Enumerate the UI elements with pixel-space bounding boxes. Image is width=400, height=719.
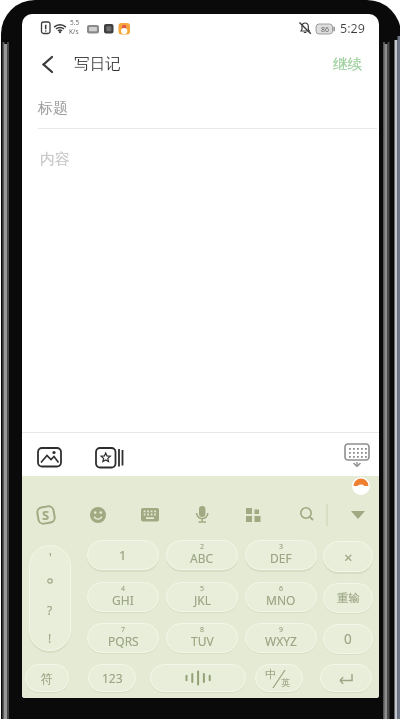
button[interactable]: 2 [166, 540, 238, 570]
button[interactable]: 重输 [323, 583, 373, 613]
staticText: PQRS [108, 633, 139, 649]
button[interactable] [137, 502, 163, 528]
staticText: 9 [279, 625, 284, 635]
staticText: K/s [69, 27, 79, 36]
button[interactable]: 1 [87, 540, 159, 570]
button[interactable]: 5 [166, 582, 238, 612]
staticText: TUV [191, 633, 214, 649]
staticText: 继续 [333, 55, 362, 73]
staticText: DEF [270, 550, 292, 566]
staticText: 2 [200, 542, 205, 552]
staticText: 标题 [38, 99, 68, 118]
staticText: S [42, 506, 50, 524]
button[interactable]: 4 [87, 582, 159, 612]
button[interactable] [240, 502, 266, 528]
staticText: 4 [121, 584, 126, 594]
button[interactable] [320, 664, 372, 692]
button[interactable] [150, 664, 246, 692]
button[interactable] [345, 502, 371, 528]
button[interactable]: 9 [245, 623, 317, 653]
staticText: ABC [190, 550, 214, 566]
button[interactable]: 符 [25, 664, 69, 692]
button[interactable]: 标题 [30, 88, 377, 128]
staticText: 0 [344, 630, 352, 648]
staticText: 英 [281, 677, 290, 688]
button[interactable] [36, 49, 62, 77]
button[interactable]: ' [29, 545, 71, 651]
staticText: 写日记 [74, 54, 121, 74]
staticText: 重输 [337, 591, 360, 605]
button[interactable]: 6 [245, 582, 317, 612]
button[interactable]: 8 [166, 623, 238, 653]
button[interactable]: 123 [88, 664, 136, 692]
staticText: JKL [194, 592, 211, 608]
button[interactable]: 0 [323, 624, 373, 654]
staticText: 中 [265, 667, 276, 681]
button[interactable] [351, 476, 371, 495]
staticText: 86 [321, 25, 330, 34]
button[interactable] [33, 502, 59, 528]
staticText: 123 [102, 670, 123, 686]
staticText: MNO [266, 592, 296, 608]
button[interactable] [293, 502, 319, 528]
staticText: 7 [121, 625, 126, 635]
button[interactable]: 3 [245, 540, 317, 570]
staticText: × [344, 547, 353, 567]
staticText: 5:29 [340, 20, 365, 36]
staticText: 8 [200, 625, 205, 635]
staticText: GHI [112, 592, 134, 608]
button[interactable] [340, 438, 374, 472]
staticText: ? [47, 602, 53, 618]
button[interactable] [85, 502, 111, 528]
staticText: ' [49, 549, 52, 565]
staticText: 内容 [40, 150, 70, 169]
button[interactable] [32, 441, 66, 473]
staticText: 5 [200, 584, 205, 594]
staticText: 6 [279, 584, 284, 594]
staticText: 符 [41, 671, 53, 686]
button[interactable]: 7 [87, 623, 159, 653]
staticText: 1 [119, 546, 127, 564]
staticText: 5.5 [70, 18, 80, 27]
button[interactable]: 中 [255, 664, 303, 692]
staticText: 3 [279, 542, 284, 552]
button[interactable]: × [323, 541, 373, 572]
button[interactable] [91, 441, 129, 473]
staticText: WXYZ [265, 633, 297, 649]
staticText: ! [48, 630, 52, 646]
button[interactable]: 继续 [322, 52, 372, 76]
button[interactable] [189, 502, 215, 528]
